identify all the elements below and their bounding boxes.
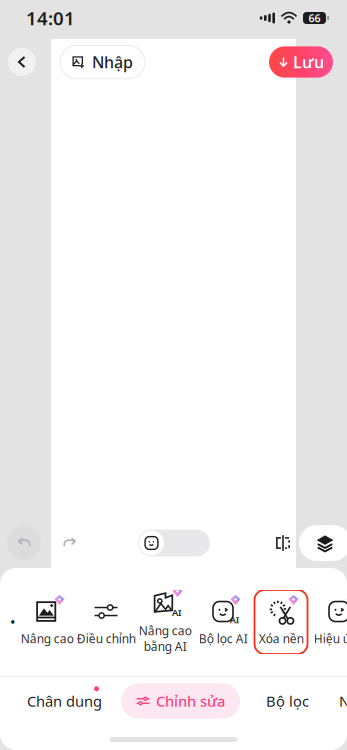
staticText: Xóa nền	[258, 630, 303, 646]
button[interactable]: Hiệu ứng	[310, 590, 347, 654]
staticText: Nhãn	[339, 691, 347, 711]
button[interactable]: Nhãn	[327, 682, 347, 720]
button[interactable]: Back	[6, 46, 38, 78]
button[interactable]: Chỉnh sửa	[121, 683, 240, 719]
staticText: Chỉnh sửa	[156, 691, 225, 711]
staticText: Bộ lọc AI	[198, 630, 247, 646]
staticText: Lưu	[293, 51, 324, 73]
staticText: Chân dung	[27, 691, 102, 711]
staticText: Nhập	[92, 51, 133, 73]
button[interactable]: AI enhance toggle	[138, 529, 210, 556]
staticText: Điều chỉnh	[76, 630, 135, 646]
button[interactable]: AI	[194, 590, 252, 654]
button[interactable]: Chân dung	[18, 682, 111, 720]
button[interactable]: AI	[136, 590, 194, 654]
staticText: Nâng cao	[20, 630, 73, 646]
staticText: Hiệu ứng	[313, 630, 347, 646]
button[interactable]: Nhập	[60, 45, 145, 79]
button[interactable]: Điều chỉnh	[76, 590, 136, 654]
button[interactable]: Undo	[6, 525, 42, 561]
button[interactable]: Layers	[299, 525, 347, 561]
button[interactable]: Compare original	[267, 527, 299, 559]
button[interactable]: Bộ lọc	[254, 682, 321, 720]
staticText: AI	[230, 613, 239, 626]
staticText: 66	[308, 11, 320, 25]
staticText: AI	[172, 606, 181, 619]
button[interactable]: Lưu	[269, 46, 333, 78]
staticText: Bộ lọc	[266, 691, 309, 711]
staticText: 14:01	[26, 6, 75, 30]
button[interactable]: Redo	[52, 525, 88, 561]
button[interactable]: Nâng cao	[18, 590, 76, 654]
staticText: •	[10, 612, 16, 632]
button[interactable]: Xóa nền	[252, 590, 310, 654]
staticText: Nâng cao bằng AI	[138, 623, 191, 654]
